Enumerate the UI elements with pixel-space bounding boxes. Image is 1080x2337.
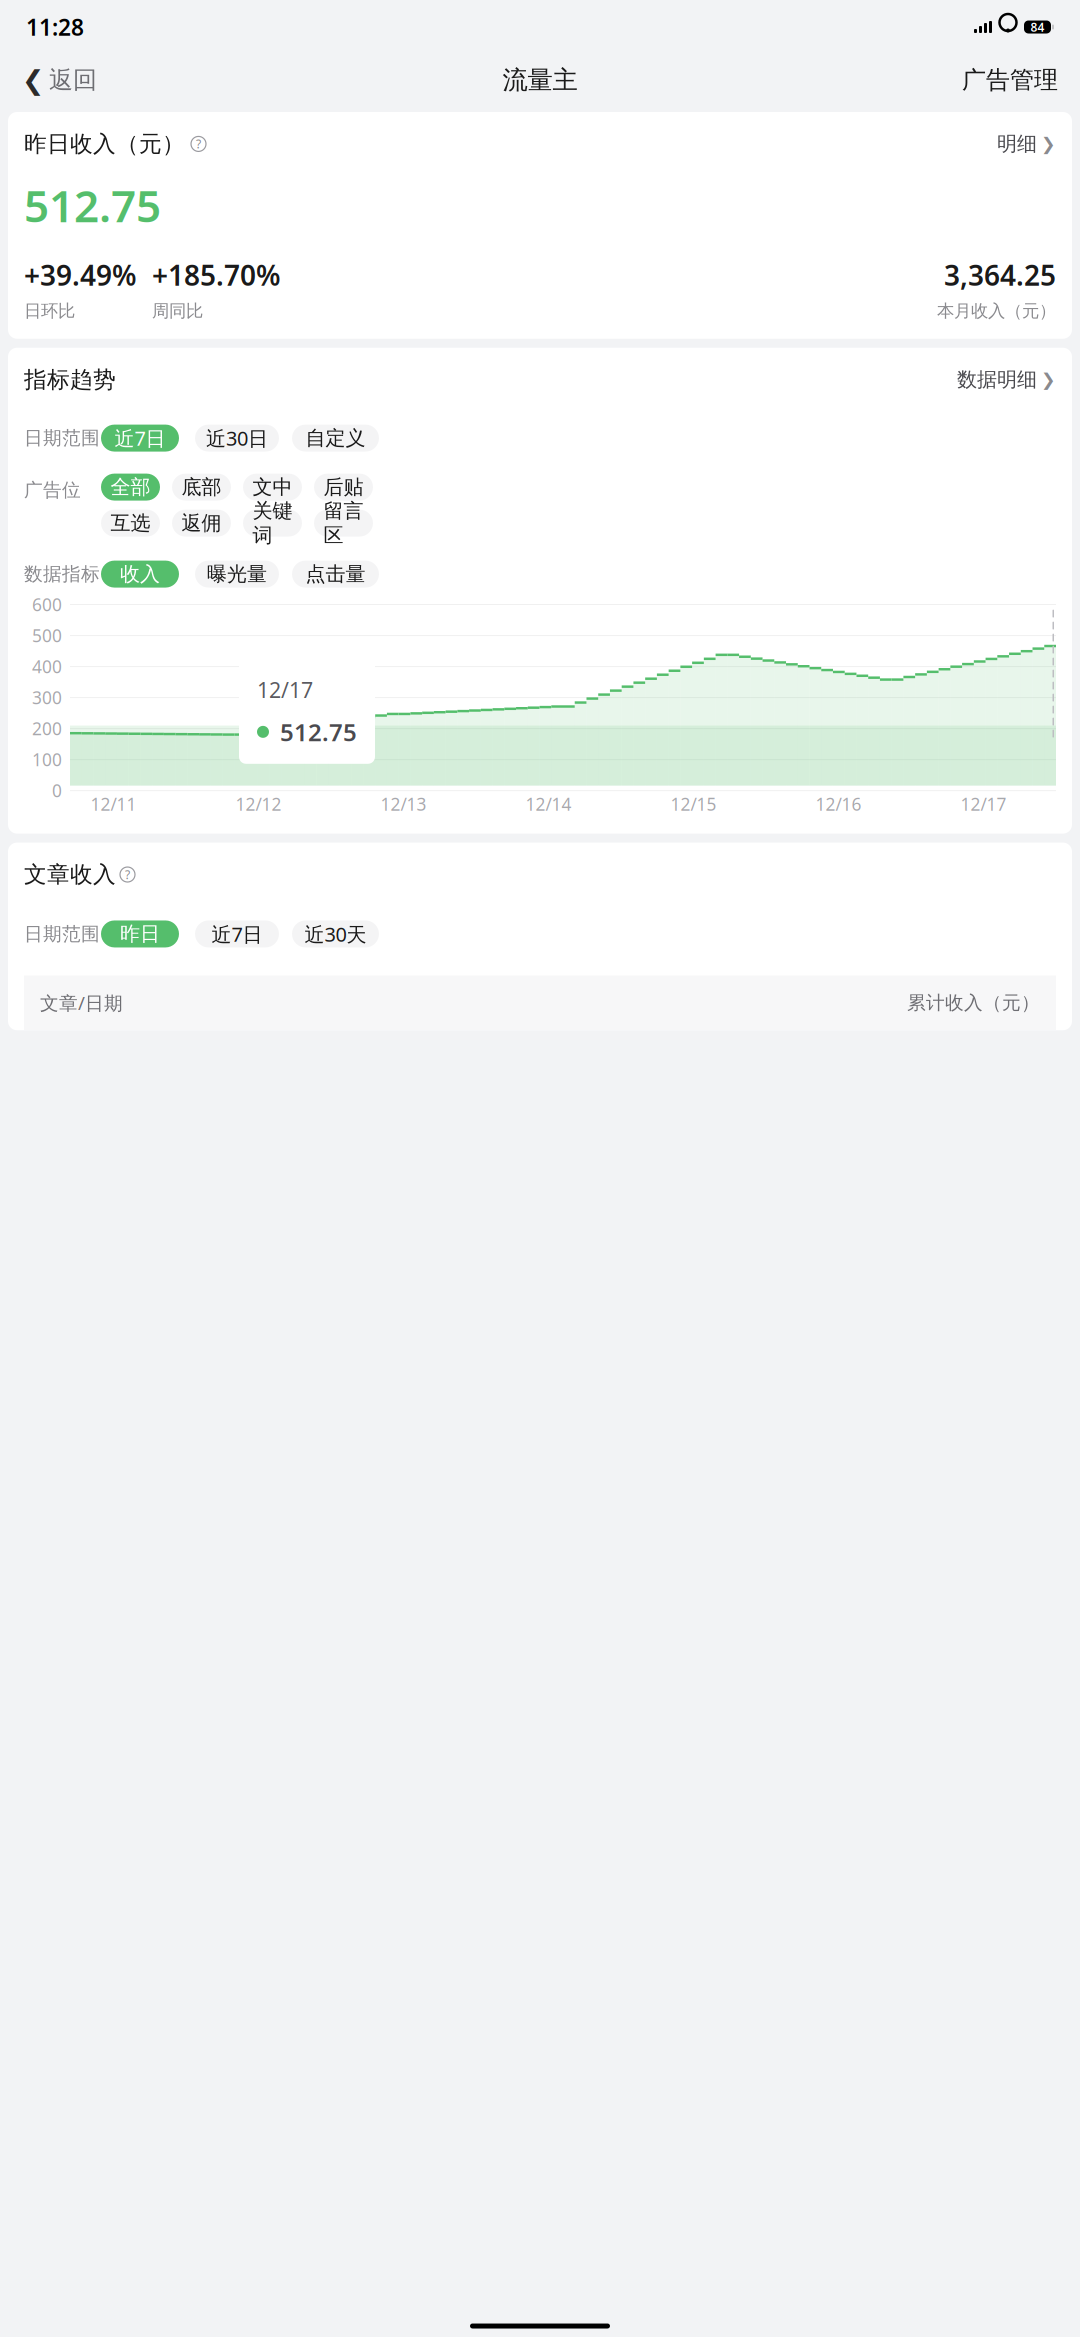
staticText: 数据指标: [24, 563, 100, 585]
staticText: 点击量: [305, 562, 365, 586]
staticText: 近7日: [211, 921, 262, 947]
button[interactable]: 留言区: [314, 510, 373, 537]
staticText: 文章收入: [24, 861, 116, 888]
button[interactable]: 后贴: [314, 474, 373, 501]
button[interactable]: 近7日: [101, 425, 179, 452]
staticText: 11:28: [26, 12, 84, 42]
staticText: 日期范围: [24, 922, 100, 945]
button[interactable]: 全部: [101, 474, 160, 501]
staticText: ❯: [1041, 134, 1056, 154]
button[interactable]: 明细: [997, 132, 1056, 156]
staticText: 留言区: [323, 498, 363, 548]
staticText: 底部: [181, 475, 221, 499]
staticText: 明细: [997, 132, 1037, 156]
staticText: ❯: [1041, 370, 1056, 389]
staticText: 全部: [110, 475, 150, 499]
staticText: 近30天: [304, 921, 366, 947]
staticText: 关键词: [252, 498, 292, 548]
staticText: 互选: [110, 511, 150, 535]
staticText: 100: [32, 748, 62, 771]
staticText: 0: [52, 779, 62, 802]
staticText: 12/17: [257, 676, 313, 704]
staticText: ❮: [22, 65, 44, 95]
staticText: 12/12: [235, 793, 281, 816]
staticText: 200: [32, 717, 62, 740]
staticText: 本月收入（元）: [937, 300, 1056, 322]
staticText: 400: [32, 655, 62, 678]
staticText: 返回: [49, 65, 97, 95]
staticText: 近30日: [206, 425, 268, 451]
staticText: 日环比: [24, 300, 75, 322]
staticText: 512.75: [280, 716, 357, 748]
staticText: 收入: [120, 562, 160, 586]
button[interactable]: 近7日: [195, 920, 279, 947]
staticText: 12/15: [670, 793, 716, 816]
staticText: 广告位: [24, 479, 81, 501]
staticText: 昨日: [120, 922, 160, 946]
button[interactable]: 返佣: [172, 510, 231, 537]
button[interactable]: 收入: [101, 561, 179, 588]
staticText: 3,364.25: [944, 256, 1056, 293]
staticText: 累计收入（元）: [907, 991, 1040, 1014]
button[interactable]: ❮: [12, 57, 107, 103]
staticText: 周同比: [152, 300, 203, 322]
staticText: 12/17: [960, 793, 1006, 816]
staticText: 自定义: [305, 426, 365, 450]
staticText: 昨日收入（元）: [24, 130, 185, 158]
button[interactable]: 文中: [243, 474, 302, 501]
staticText: +39.49%: [24, 256, 137, 293]
button[interactable]: 广告管理: [952, 57, 1068, 103]
staticText: 512.75: [24, 176, 161, 234]
staticText: ?: [196, 136, 201, 152]
button[interactable]: 近30天: [292, 920, 379, 947]
staticText: 12/11: [90, 793, 136, 816]
staticText: 文中: [252, 475, 292, 499]
staticText: 曝光量: [207, 562, 267, 586]
staticText: ?: [125, 867, 130, 882]
button[interactable]: 点击量: [292, 561, 379, 588]
button[interactable]: 自定义: [292, 425, 379, 452]
staticText: 日期范围: [24, 427, 100, 449]
staticText: 12/16: [815, 793, 861, 816]
button[interactable]: 曝光量: [195, 561, 279, 588]
staticText: 600: [32, 593, 62, 616]
staticText: 12/13: [380, 793, 426, 816]
button[interactable]: 底部: [172, 474, 231, 501]
button[interactable]: 互选: [101, 510, 160, 537]
staticText: 500: [32, 624, 62, 647]
staticText: 文章/日期: [40, 990, 123, 1015]
staticText: 后贴: [323, 475, 363, 499]
staticText: 84: [1030, 19, 1044, 35]
staticText: +185.70%: [152, 256, 281, 293]
button[interactable]: 近30日: [195, 425, 279, 452]
staticText: 12/14: [525, 793, 571, 816]
staticText: 返佣: [181, 511, 221, 535]
staticText: 数据明细: [957, 367, 1037, 392]
button[interactable]: 昨日: [101, 920, 179, 947]
staticText: 广告管理: [962, 65, 1058, 95]
staticText: 指标趋势: [24, 366, 116, 393]
button[interactable]: 关键词: [243, 510, 302, 537]
staticText: 近7日: [114, 425, 165, 451]
staticText: 流量主: [502, 64, 577, 95]
button[interactable]: 数据明细: [957, 367, 1056, 392]
staticText: 300: [32, 686, 62, 709]
